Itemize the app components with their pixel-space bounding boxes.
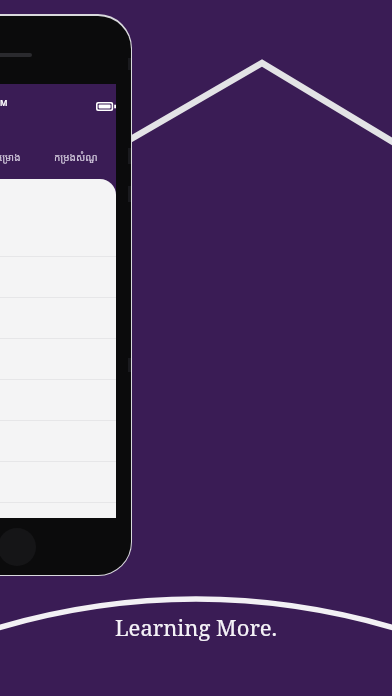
staticText: គម្រោង — [0, 150, 21, 164]
button[interactable]: គម្រោង — [0, 146, 34, 168]
button[interactable]: កម្រងសំណួ — [38, 146, 114, 168]
other: Battery — [96, 102, 116, 111]
button[interactable] — [0, 502, 116, 518]
staticText: កម្រងសំណួ — [54, 150, 98, 164]
staticText: Learning More. — [0, 612, 392, 696]
staticText: M — [0, 97, 8, 108]
